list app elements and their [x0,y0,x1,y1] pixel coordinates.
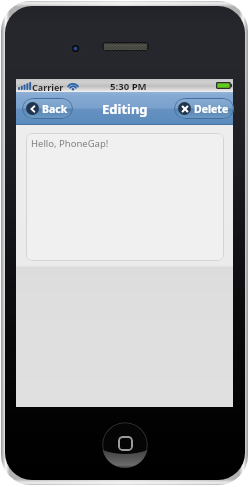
button[interactable]: Hello, PhoneGap! [26,133,224,261]
staticText: Editing [102,100,148,118]
staticText: Delete [194,102,229,116]
button[interactable]: Back [26,98,68,119]
button[interactable]: Delete [178,98,229,119]
button[interactable]: Home [102,422,148,468]
staticText: Back [42,102,68,116]
staticText: 5:30 PM [110,80,147,93]
staticText: Carrier [32,81,64,93]
staticText: Hello, PhoneGap! [31,137,109,150]
